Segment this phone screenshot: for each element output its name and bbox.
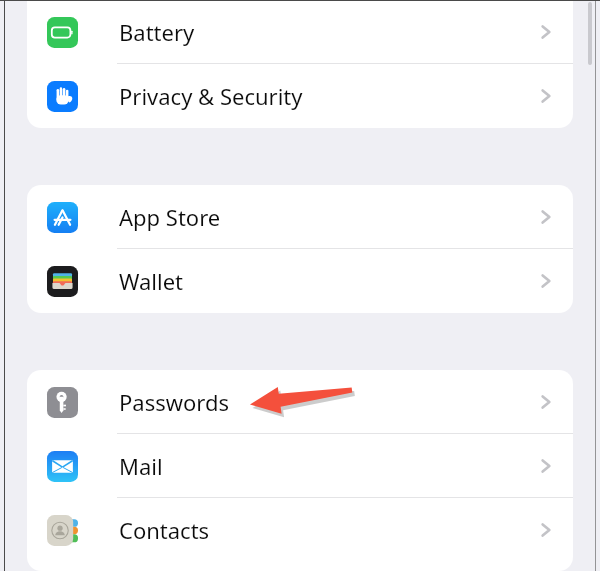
button[interactable]: Wallet: [27, 249, 573, 313]
button[interactable]: Contacts: [27, 498, 573, 562]
staticText: Wallet: [119, 266, 184, 296]
staticText: Mail: [119, 451, 163, 481]
button[interactable]: Passwords: [27, 370, 573, 434]
staticText: Contacts: [119, 515, 210, 545]
staticText: Privacy & Security: [119, 81, 303, 111]
button[interactable]: Mail: [27, 434, 573, 498]
button[interactable]: App Store: [27, 185, 573, 249]
button[interactable]: Battery: [27, 0, 573, 64]
staticText: Passwords: [119, 387, 230, 417]
button[interactable]: Privacy & Security: [27, 64, 573, 128]
staticText: Battery: [119, 17, 195, 47]
staticText: App Store: [119, 202, 221, 232]
